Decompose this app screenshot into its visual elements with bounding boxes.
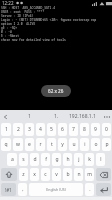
staticText: x [33,171,36,178]
button[interactable]: f [41,153,50,166]
staticText: u [72,141,76,148]
button[interactable]: t [47,138,56,151]
staticText: 3 [28,126,31,133]
staticText: chose now for detailed view of tools [1,38,66,42]
staticText: 192.168.1.1 [69,113,96,120]
button[interactable]: d [30,153,39,166]
staticText: 8 [83,126,86,133]
staticText: $ : ~%best [1,34,20,38]
staticText: o [94,141,98,148]
button[interactable]: 62 x 26 [41,85,71,97]
button[interactable]: v [52,168,61,181]
staticText: 1 [28,113,31,120]
button[interactable]: e [25,138,34,151]
button[interactable]: 2 [13,123,23,136]
button[interactable]: w [13,138,23,151]
staticText: m [87,171,92,178]
button[interactable]: 3 [25,123,34,136]
button[interactable]: 1 [1,123,11,136]
button[interactable]: 7 [69,123,78,136]
staticText: option I 2.0 ALIVE [1,22,36,26]
staticText: e [28,141,31,148]
button[interactable]: Previous suggestions [1,112,10,121]
button[interactable]: h [63,153,72,166]
button[interactable]: Enter [96,183,111,196]
staticText: 7 [72,126,75,133]
button[interactable]: , [18,183,27,196]
staticText: 1 [5,126,8,133]
button[interactable]: i [80,138,89,151]
staticText: 5 [50,126,53,133]
staticText: r [39,141,42,148]
staticText: s [22,156,25,163]
staticText: SSH : HOST ANS_ACCANED_SGT1.4 [1,6,56,10]
staticText: f [45,156,47,163]
staticText: Login : ~ (NET) DT5000Dt65 <20>: fqpvao … [1,18,97,22]
staticText: . [89,186,91,193]
staticText: 62 x 26 [48,88,64,94]
staticText: 9 [94,126,97,133]
staticText: d [33,156,37,163]
staticText: l [100,156,102,163]
button[interactable]: a [7,153,17,166]
staticText: USER : root PASS : **** [1,10,45,14]
button[interactable]: More options [102,112,111,121]
staticText: 4 [39,126,42,133]
button[interactable]: g [52,153,61,166]
staticText: 6 [61,126,64,133]
staticText: k [88,156,91,163]
button[interactable]: u [69,138,78,151]
button[interactable]: 5 [47,123,56,136]
button[interactable]: Backspace [96,168,111,181]
button[interactable]: k [85,153,94,166]
button[interactable]: o [91,138,100,151]
staticText: Server : ID (IPv4) [1,14,34,18]
button[interactable]: 9 [91,123,100,136]
button[interactable]: n [74,168,83,181]
button[interactable]: 8 [80,123,89,136]
staticText: g$ : ~SQ> [1,26,18,30]
staticText: q [4,141,8,148]
staticText: 0 [105,126,108,133]
button[interactable]: y [58,138,67,151]
button[interactable]: x [30,168,39,181]
button[interactable]: 0 [102,123,111,136]
staticText: h [66,156,70,163]
button[interactable]: 6 [58,123,67,136]
staticText: 2 [17,126,20,133]
staticText: !#1 [5,187,12,193]
staticText: t [51,141,53,148]
staticText: n [77,171,81,178]
button[interactable]: 1. [51,110,61,122]
button[interactable]: s [19,153,28,166]
staticText: g [55,156,59,163]
button[interactable]: m [85,168,94,181]
button[interactable]: Shift [1,168,17,181]
button[interactable]: b [63,168,72,181]
staticText: 1. [54,113,59,120]
button[interactable]: . [85,183,94,196]
button[interactable]: p [102,138,111,151]
button[interactable]: j [74,153,83,166]
staticText: y [61,141,64,148]
staticText: z [22,171,25,178]
staticText: j [78,156,80,163]
button[interactable]: !#1 [1,183,16,196]
button[interactable]: q [1,138,11,151]
staticText: a [11,156,14,163]
button[interactable]: l [96,153,105,166]
button[interactable]: c [41,168,50,181]
staticText: i [84,141,86,148]
button[interactable]: 4 [36,123,45,136]
staticText: , [22,186,24,193]
button[interactable]: 1 [24,110,34,122]
staticText: c [44,171,47,178]
button[interactable]: 192.168.1.1 [67,110,97,122]
button[interactable]: English (US) [29,183,83,196]
staticText: b [66,171,70,178]
staticText: 0 : ~# [1,30,12,34]
button[interactable]: z [19,168,28,181]
staticText: p [105,141,109,148]
button[interactable]: r [36,138,45,151]
staticText: English (US) [46,187,66,192]
